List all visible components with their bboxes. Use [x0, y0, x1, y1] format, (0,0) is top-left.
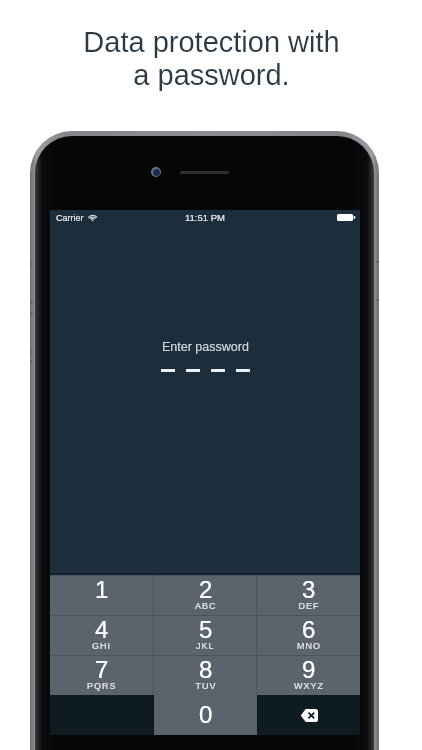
- staticText: WXYZ: [294, 681, 324, 691]
- staticText: 0: [199, 701, 213, 728]
- staticText: 2: [199, 576, 213, 603]
- staticText: 6: [302, 616, 316, 643]
- button[interactable]: 3: [257, 575, 360, 615]
- staticText: GHI: [92, 641, 112, 651]
- button[interactable]: 9: [257, 655, 360, 695]
- staticText: Enter password: [162, 340, 249, 354]
- staticText: PQRS: [87, 681, 117, 691]
- staticText: 9: [302, 656, 316, 683]
- button[interactable]: 5: [154, 615, 257, 655]
- button[interactable]: 1: [50, 575, 154, 615]
- button[interactable]: 2: [154, 575, 257, 615]
- staticText: ABC: [195, 601, 217, 611]
- staticText: 8: [199, 656, 213, 683]
- staticText: JKL: [196, 641, 215, 651]
- staticText: Data protection with a password.: [83, 26, 340, 91]
- staticText: TUV: [195, 681, 216, 691]
- button[interactable]: 7: [50, 655, 154, 695]
- staticText: 4: [95, 616, 109, 643]
- staticText: DEF: [298, 601, 319, 611]
- staticText: 5: [199, 616, 213, 643]
- staticText: 11:51 PM: [185, 212, 225, 223]
- staticText: MNO: [297, 641, 321, 651]
- button[interactable]: 0: [154, 695, 257, 735]
- button[interactable]: Backspace: [257, 695, 360, 735]
- button[interactable]: 4: [50, 615, 154, 655]
- staticText: 1: [95, 576, 109, 603]
- staticText: Carrier: [56, 213, 84, 223]
- staticText: 7: [95, 656, 109, 683]
- staticText: 3: [302, 576, 316, 603]
- button[interactable]: 8: [154, 655, 257, 695]
- button[interactable]: 6: [257, 615, 360, 655]
